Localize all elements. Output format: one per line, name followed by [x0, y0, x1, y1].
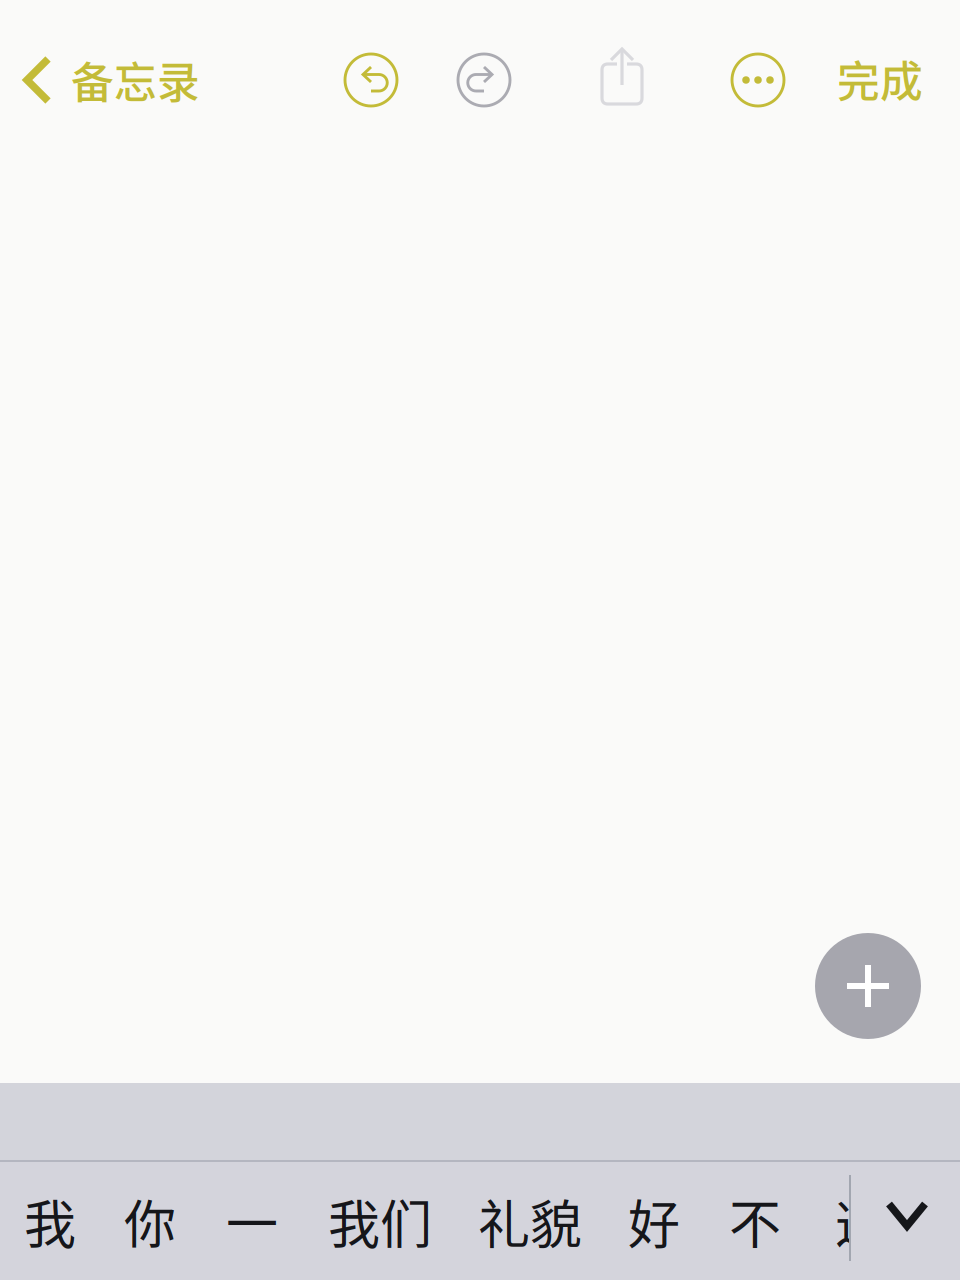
button[interactable]: Redo	[458, 54, 510, 106]
button[interactable]: 礼貌	[456, 1162, 604, 1280]
button[interactable]: 这	[813, 1162, 909, 1280]
button[interactable]: 我	[0, 1162, 100, 1280]
button[interactable]: 你	[100, 1162, 200, 1280]
button[interactable]: Share	[600, 46, 644, 110]
staticText: 我们	[328, 1183, 432, 1259]
button[interactable]: 完成	[823, 34, 937, 124]
staticText: 我	[24, 1183, 76, 1259]
button[interactable]: 我们	[304, 1162, 456, 1280]
staticText: 好	[628, 1183, 680, 1259]
button[interactable]: 不	[704, 1162, 806, 1280]
staticText: 你	[124, 1183, 176, 1259]
button[interactable]: Hide keyboard	[867, 1156, 947, 1274]
button[interactable]: 好	[604, 1162, 704, 1280]
staticText: 一	[226, 1183, 278, 1259]
button[interactable]: 一	[200, 1162, 304, 1280]
staticText: 不	[729, 1183, 781, 1259]
staticText: 这	[835, 1183, 887, 1259]
button[interactable]: 备忘录	[0, 20, 218, 140]
staticText: 备忘录	[71, 49, 200, 111]
button[interactable]: Add attachment	[815, 933, 921, 1039]
button[interactable]: More options	[732, 54, 784, 106]
button[interactable]: Undo	[345, 54, 397, 106]
staticText: 完成	[837, 48, 923, 110]
staticText: 礼貌	[478, 1183, 582, 1259]
